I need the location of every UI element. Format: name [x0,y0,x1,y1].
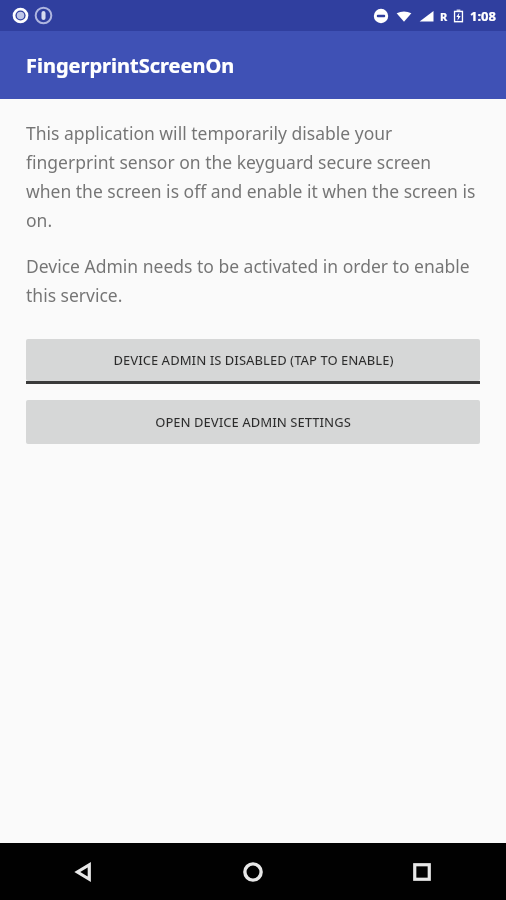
staticText: R [440,9,448,24]
staticText: FingerprintScreenOn [26,52,235,79]
button[interactable]: DEVICE ADMIN IS DISABLED (TAP TO ENABLE) [26,339,480,381]
staticText: 1:08 [470,7,496,25]
button[interactable]: Recent apps [337,843,506,900]
staticText: OPEN DEVICE ADMIN SETTINGS [155,413,351,431]
staticText: Device Admin needs to be activated in or… [26,254,480,307]
button[interactable]: OPEN DEVICE ADMIN SETTINGS [26,400,480,444]
button[interactable]: Back [0,843,168,900]
staticText: This application will temporarily disabl… [26,121,480,232]
button[interactable]: Home [168,843,337,900]
staticText: DEVICE ADMIN IS DISABLED (TAP TO ENABLE) [113,351,394,369]
